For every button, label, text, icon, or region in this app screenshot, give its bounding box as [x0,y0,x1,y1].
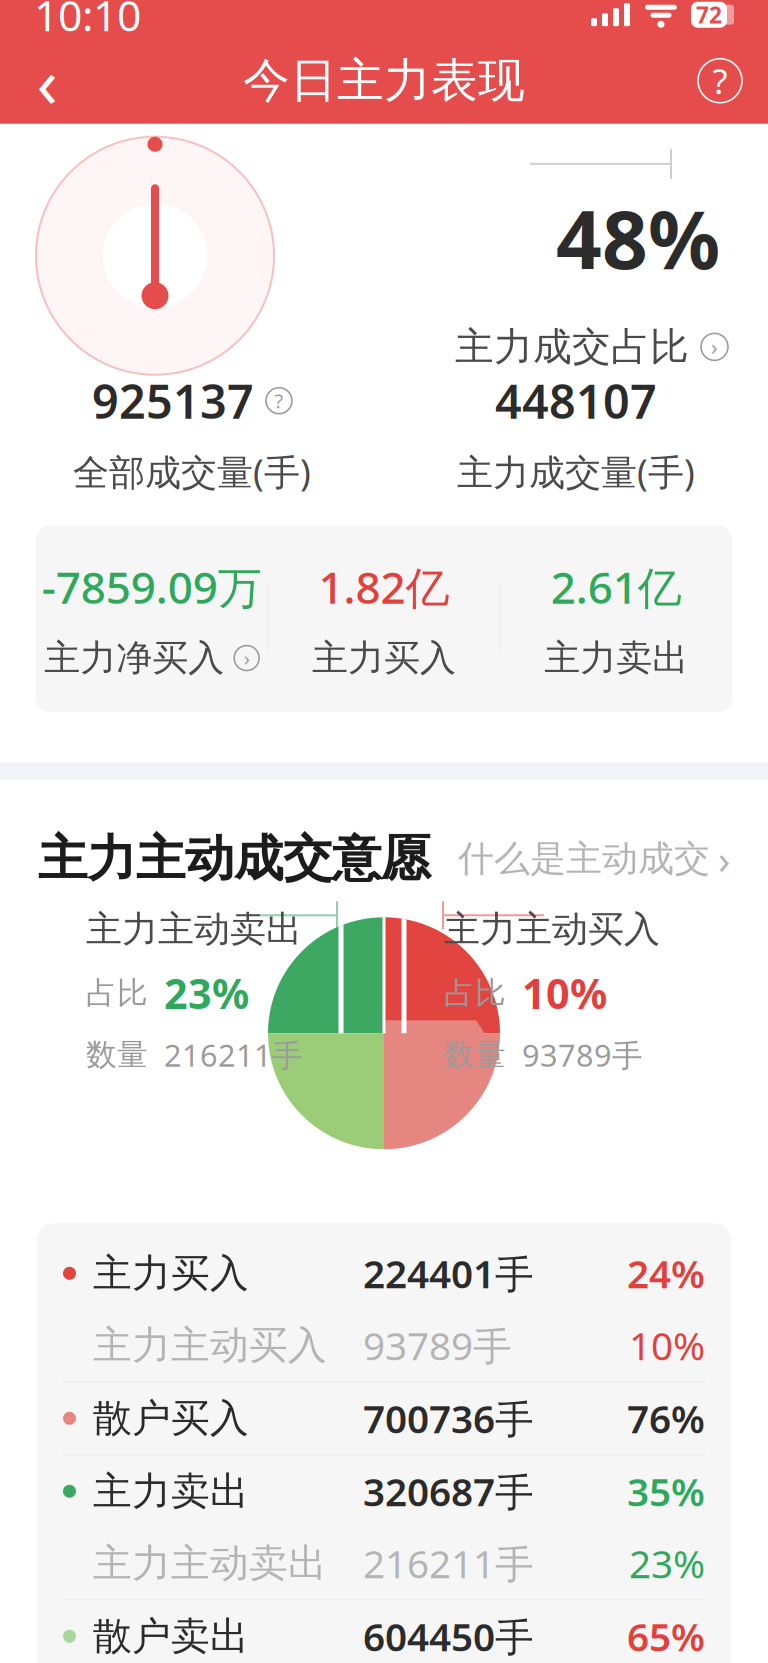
staticText: ‹ [36,35,57,127]
staticText: 散户卖出 [93,1612,249,1660]
staticText: 主力主动卖出 [93,1539,327,1587]
staticText: 今日主力表现 [243,52,525,109]
button[interactable]: 什么是主动成交 [458,824,730,893]
staticText: 主力成交量(手) [457,448,695,495]
button[interactable]: 返回 [0,51,74,111]
button[interactable]: 主力成交占比 [455,291,768,377]
staticText: 主力成交占比 [455,323,689,371]
staticText: ? [274,387,283,414]
staticText: 35% [627,1466,705,1517]
staticText: 数量 [86,1036,148,1074]
staticText: 23% [629,1538,705,1589]
staticText: 占比 [86,974,148,1012]
staticText: 主力净买入 [44,636,224,680]
staticText: 主力主动买入 [93,1321,327,1369]
staticText: 全部成交量(手) [73,448,311,495]
staticText: 48% [556,185,720,291]
staticText: 216211手 [164,1034,303,1075]
staticText: 占比 [444,974,506,1012]
staticText: 主力买入 [93,1249,249,1297]
staticText: 93789手 [363,1320,512,1371]
staticText: 65% [627,1611,705,1662]
staticText: 320687手 [363,1466,534,1517]
staticText: 2.61亿 [551,557,682,616]
staticText: 604450手 [363,1611,534,1662]
staticText: 76% [627,1393,705,1444]
staticText: › [244,645,250,671]
staticText: 主力主动卖出 [86,907,302,951]
staticText: 主力主动成交意愿 [38,828,430,889]
staticText: › [711,333,718,361]
staticText: 23% [164,965,249,1020]
staticText: -7859.09万 [42,557,262,616]
button[interactable]: 帮助 [698,49,768,113]
staticText: 主力主动买入 [444,907,660,951]
staticText: ? [712,58,727,104]
staticText: 10% [629,1320,705,1371]
staticText: 10% [522,965,607,1020]
staticText: 925137 [92,370,254,432]
staticText: 448107 [495,370,657,432]
staticText: 1.82亿 [318,557,449,616]
staticText: › [718,832,730,885]
staticText: 10:10 [34,0,141,43]
staticText: 224401手 [363,1248,534,1299]
staticText: 216211手 [363,1538,534,1589]
button[interactable]: -7859.09万 [36,553,267,684]
staticText: 什么是主动成交 [458,837,710,881]
staticText: 主力卖出 [93,1467,249,1515]
staticText: 主力买入 [312,636,456,680]
staticText: 24% [627,1248,705,1299]
staticText: 主力卖出 [544,636,688,680]
staticText: 700736手 [363,1393,534,1444]
staticText: 散户买入 [93,1394,249,1442]
staticText: 93789手 [522,1034,643,1075]
staticText: 72 [696,0,722,30]
staticText: 数量 [444,1036,506,1074]
